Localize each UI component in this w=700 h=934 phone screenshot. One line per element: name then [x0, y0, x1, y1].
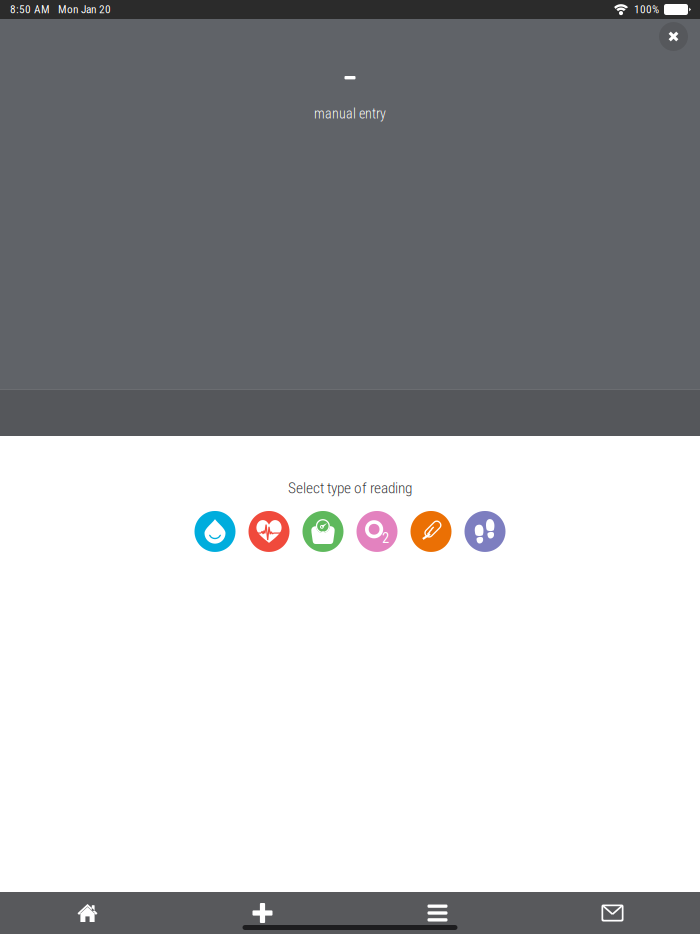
- button[interactable]: Close: [659, 22, 688, 51]
- button[interactable]: Weight: [302, 511, 343, 552]
- staticText: 2: [382, 529, 389, 547]
- button[interactable]: Temperature: [410, 511, 451, 552]
- staticText: manual entry: [314, 105, 386, 122]
- button[interactable]: Add reading: [175, 892, 350, 934]
- button[interactable]: Blood glucose: [194, 511, 235, 552]
- button[interactable]: Messages: [525, 892, 700, 934]
- button[interactable]: Menu: [350, 892, 525, 934]
- staticText: 100%: [634, 3, 659, 16]
- staticText: Mon Jan 20: [58, 3, 111, 16]
- button[interactable]: Oxygen saturation: [356, 511, 397, 552]
- button[interactable]: Home: [0, 892, 175, 934]
- staticText: Select type of reading: [288, 479, 412, 497]
- staticText: 8:50 AM: [10, 3, 50, 16]
- button[interactable]: Heart rate: [248, 511, 289, 552]
- button[interactable]: Steps: [464, 511, 505, 552]
